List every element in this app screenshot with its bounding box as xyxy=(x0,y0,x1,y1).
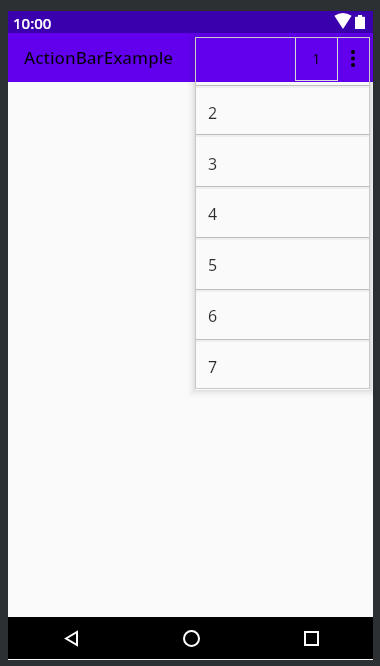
button[interactable]: More options xyxy=(341,46,365,70)
button[interactable]: Back xyxy=(51,618,91,658)
button[interactable]: 7 xyxy=(195,339,370,390)
staticText: 7 xyxy=(208,356,218,378)
button[interactable]: Home xyxy=(171,618,211,658)
staticText: 2 xyxy=(208,102,218,124)
staticText: 10:00 xyxy=(13,13,52,33)
staticText: ActionBarExample xyxy=(24,46,174,69)
staticText: 5 xyxy=(208,254,218,276)
staticText: 4 xyxy=(208,203,218,225)
button[interactable]: 6 xyxy=(195,288,370,339)
staticText: 6 xyxy=(208,305,218,327)
button[interactable]: 2 xyxy=(195,85,370,136)
button[interactable]: Recents xyxy=(291,618,331,658)
staticText: 3 xyxy=(208,153,218,175)
button[interactable]: 5 xyxy=(195,237,370,288)
staticText: 1 xyxy=(312,48,321,68)
button[interactable]: 4 xyxy=(195,186,370,237)
button[interactable]: 1 xyxy=(295,37,338,81)
button[interactable]: 3 xyxy=(195,136,370,187)
